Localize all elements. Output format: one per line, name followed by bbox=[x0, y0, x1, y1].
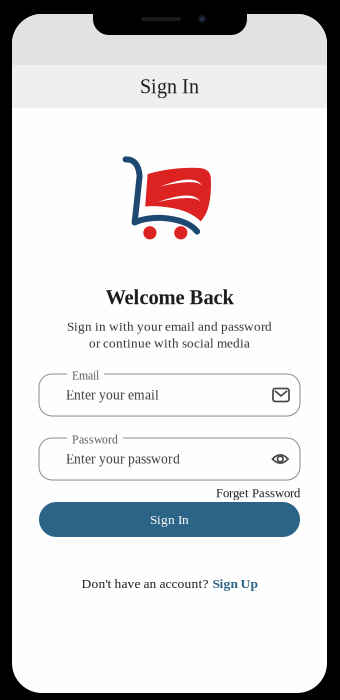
staticText: Enter your password bbox=[66, 451, 180, 467]
staticText: Sign In bbox=[140, 75, 199, 97]
staticText: or continue with social media bbox=[89, 336, 250, 350]
staticText: Welcome Back bbox=[105, 286, 233, 309]
staticText: Sign In bbox=[150, 512, 189, 527]
button[interactable]: Sign In bbox=[39, 502, 300, 537]
staticText: Password bbox=[72, 433, 118, 446]
staticText: Sign Up bbox=[212, 576, 257, 591]
staticText: Forget Password bbox=[216, 486, 300, 500]
button[interactable]: Forget Password bbox=[39, 486, 300, 500]
staticText: Enter your email bbox=[66, 387, 159, 403]
button[interactable]: Sign Up bbox=[212, 576, 257, 591]
staticText: Don't have an account? bbox=[81, 576, 208, 591]
staticText: Email bbox=[72, 369, 99, 382]
staticText: Sign in with your email and password bbox=[67, 319, 272, 334]
